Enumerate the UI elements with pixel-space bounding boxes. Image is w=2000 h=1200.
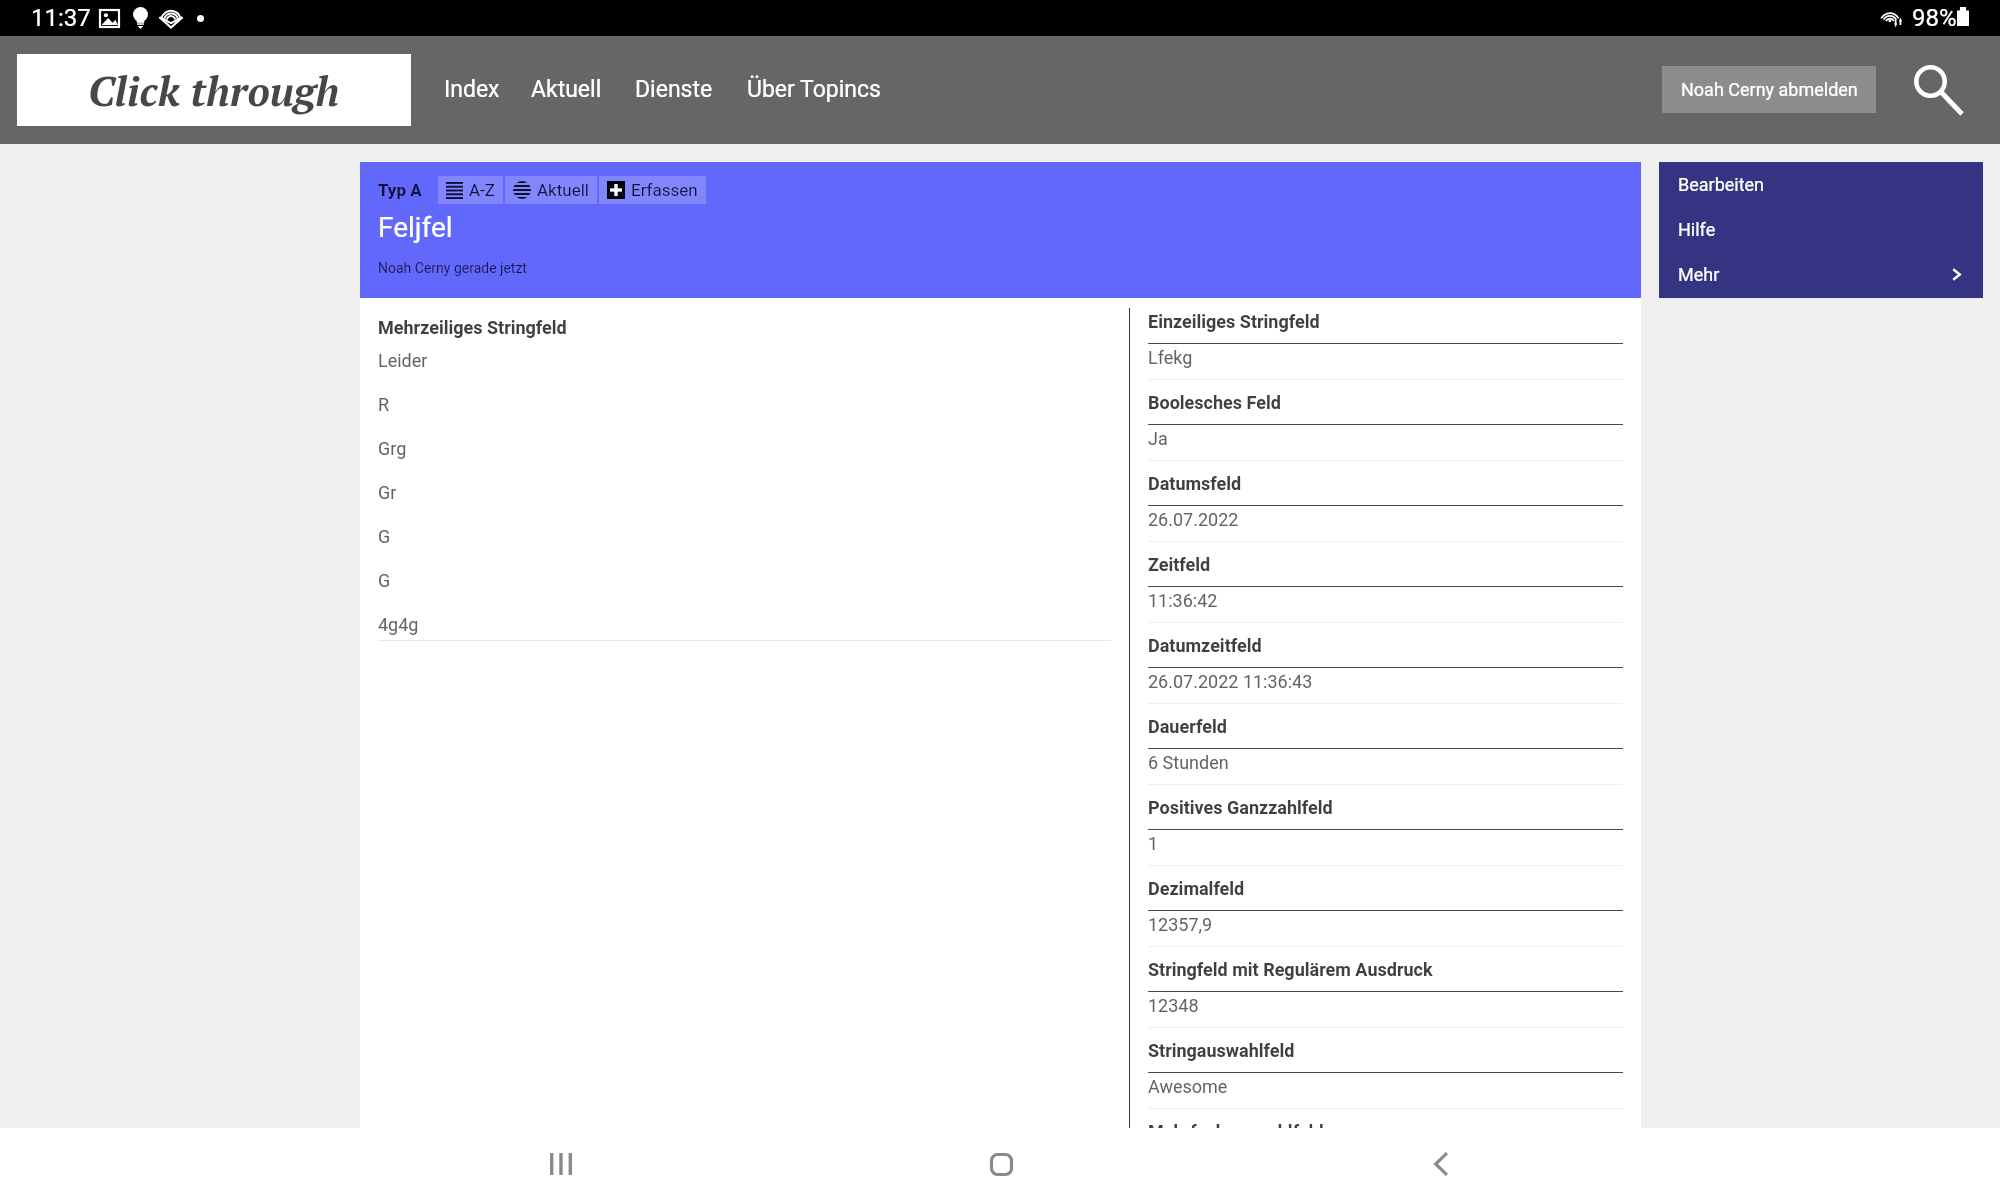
button[interactable]: A-Z [438, 176, 503, 204]
staticText: G [378, 526, 391, 547]
staticText: 98% [1912, 4, 1957, 32]
staticText: Ja [1148, 428, 1168, 449]
button[interactable]: Click through [17, 54, 411, 126]
staticText: Gr [378, 482, 397, 503]
button[interactable]: Hilfe [1659, 207, 1983, 252]
button[interactable]: Zurück [1408, 1128, 1474, 1200]
staticText: G [378, 570, 391, 591]
staticText: Dauerfeld [1148, 716, 1227, 737]
staticText: Noah Cerny gerade jetzt [378, 260, 527, 276]
staticText: Grg [378, 438, 407, 459]
staticText: A-Z [469, 180, 495, 200]
staticText: Noah Cerny abmelden [1681, 79, 1858, 100]
staticText: Mehr [1678, 264, 1720, 285]
staticText: Einzeiliges Stringfeld [1148, 311, 1320, 332]
staticText: Typ A [378, 180, 422, 200]
staticText: Zeitfeld [1148, 554, 1211, 575]
staticText: Positives Ganzzahlfeld [1148, 797, 1333, 818]
button[interactable]: Mehr [1659, 252, 1983, 297]
staticText: Datumsfeld [1148, 473, 1242, 494]
staticText: Mehrzeiliges Stringfeld [378, 317, 567, 338]
staticText: Stringfeld mit Regulärem Ausdruck [1148, 959, 1433, 980]
button[interactable]: Erfassen [599, 176, 706, 204]
staticText: Mehrfachauswahlfeld [1148, 1121, 1324, 1128]
staticText: Leider [378, 350, 428, 371]
staticText: Dienste [635, 76, 713, 103]
staticText: Datumzeitfeld [1148, 635, 1262, 656]
button[interactable]: Dienste [635, 36, 713, 144]
staticText: 12357,9 [1148, 914, 1213, 935]
button[interactable]: Bearbeiten [1659, 162, 1983, 207]
staticText: 11:36:42 [1148, 590, 1218, 611]
staticText: 6 Stunden [1148, 752, 1229, 773]
staticText: Lfekg [1148, 347, 1193, 368]
staticText: 1 [1148, 833, 1159, 854]
button[interactable]: Noah Cerny abmelden [1662, 66, 1876, 113]
staticText: 26.07.2022 [1148, 509, 1239, 530]
staticText: Feljfel [378, 211, 453, 244]
button[interactable]: Index [444, 36, 500, 144]
staticText: Awesome [1148, 1076, 1228, 1097]
staticText: 26.07.2022 11:36:43 [1148, 671, 1313, 692]
staticText: Aktuell [531, 76, 602, 103]
button[interactable]: Aktuell [505, 176, 597, 204]
staticText: R [378, 394, 390, 415]
staticText: Boolesches Feld [1148, 392, 1281, 413]
staticText: Index [444, 76, 500, 103]
button[interactable]: Startseite [968, 1128, 1034, 1200]
staticText: 12348 [1148, 995, 1199, 1016]
staticText: Click through [88, 63, 340, 117]
button[interactable]: Über Topincs [747, 36, 881, 144]
staticText: 11:37 [31, 4, 91, 32]
staticText: Aktuell [537, 180, 589, 200]
staticText: Bearbeiten [1678, 174, 1765, 195]
staticText: Erfassen [631, 180, 698, 200]
staticText: 4g4g [378, 614, 419, 635]
button[interactable]: Aktuell [531, 36, 602, 144]
staticText: Über Topincs [747, 76, 881, 103]
button[interactable]: Letzte Apps [528, 1128, 594, 1200]
staticText: Dezimalfeld [1148, 878, 1245, 899]
staticText: Hilfe [1678, 219, 1716, 240]
button[interactable]: Suche [1902, 62, 1974, 132]
staticText: Stringauswahlfeld [1148, 1040, 1295, 1061]
